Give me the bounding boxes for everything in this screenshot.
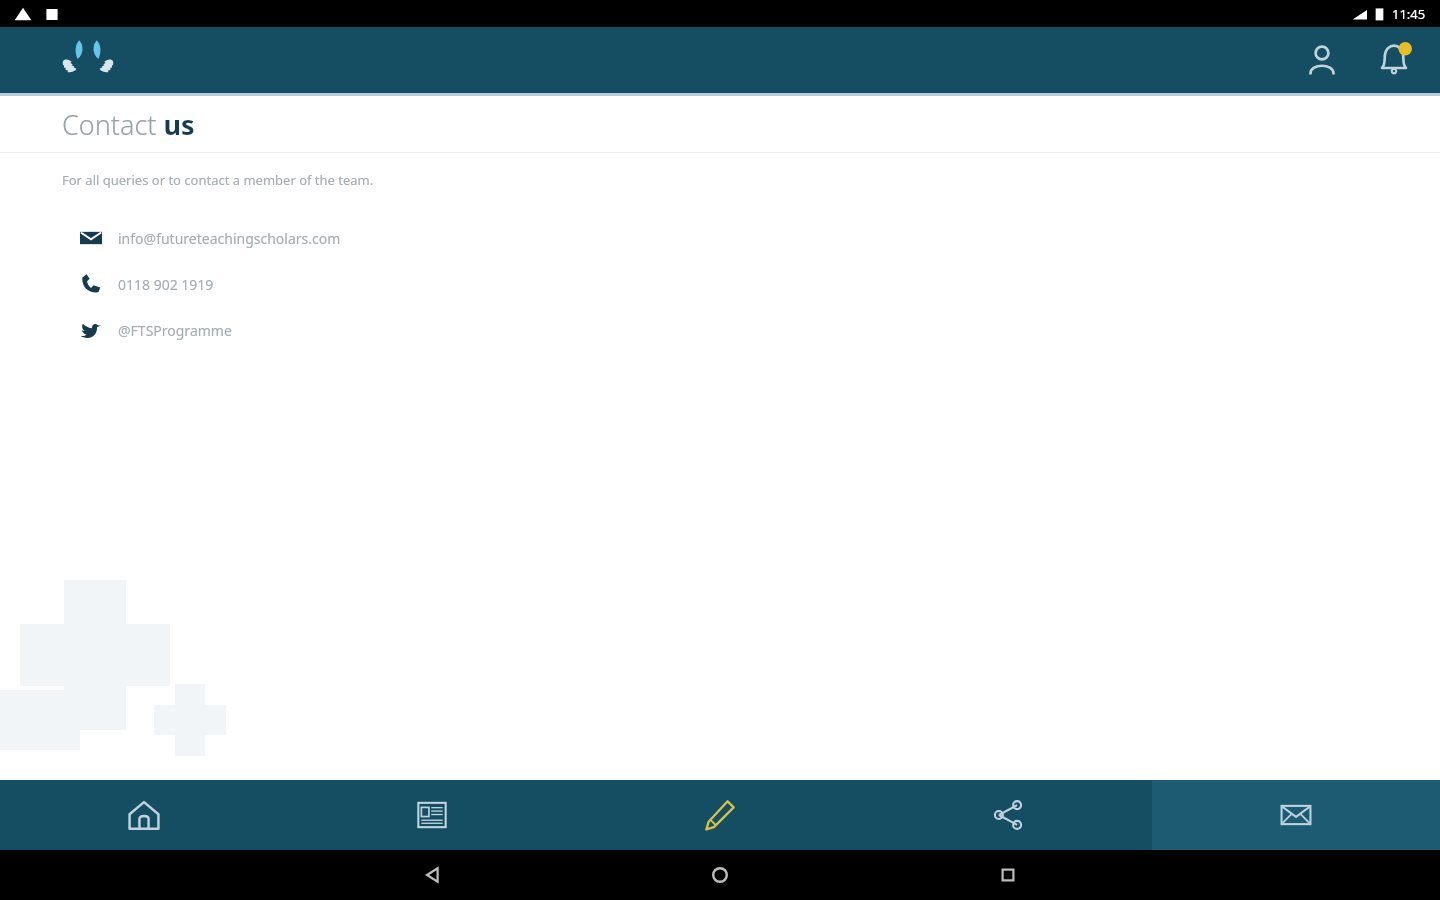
button[interactable]: News <box>288 780 576 850</box>
button[interactable]: phone <box>0 261 1440 307</box>
button[interactable]: Profile <box>1298 36 1346 84</box>
staticText: 0118 902 1919 <box>118 275 214 294</box>
staticText: 11:45 <box>1392 5 1426 23</box>
staticText: @FTSProgramme <box>118 321 232 340</box>
button[interactable]: email <box>0 215 1440 261</box>
staticText: info@futureteachingscholars.com <box>118 229 341 248</box>
staticText: Contact us <box>62 106 195 143</box>
button[interactable]: Home <box>0 780 288 850</box>
staticText: For all queries or to contact a member o… <box>62 171 374 189</box>
button[interactable]: Notifications, 1 new <box>1370 36 1418 84</box>
button[interactable]: twitter <box>0 307 1440 353</box>
button[interactable]: Contact <box>1152 780 1440 850</box>
button[interactable]: Share <box>864 780 1152 850</box>
button[interactable]: Home logo <box>62 34 114 86</box>
button[interactable]: Journal <box>576 780 864 850</box>
